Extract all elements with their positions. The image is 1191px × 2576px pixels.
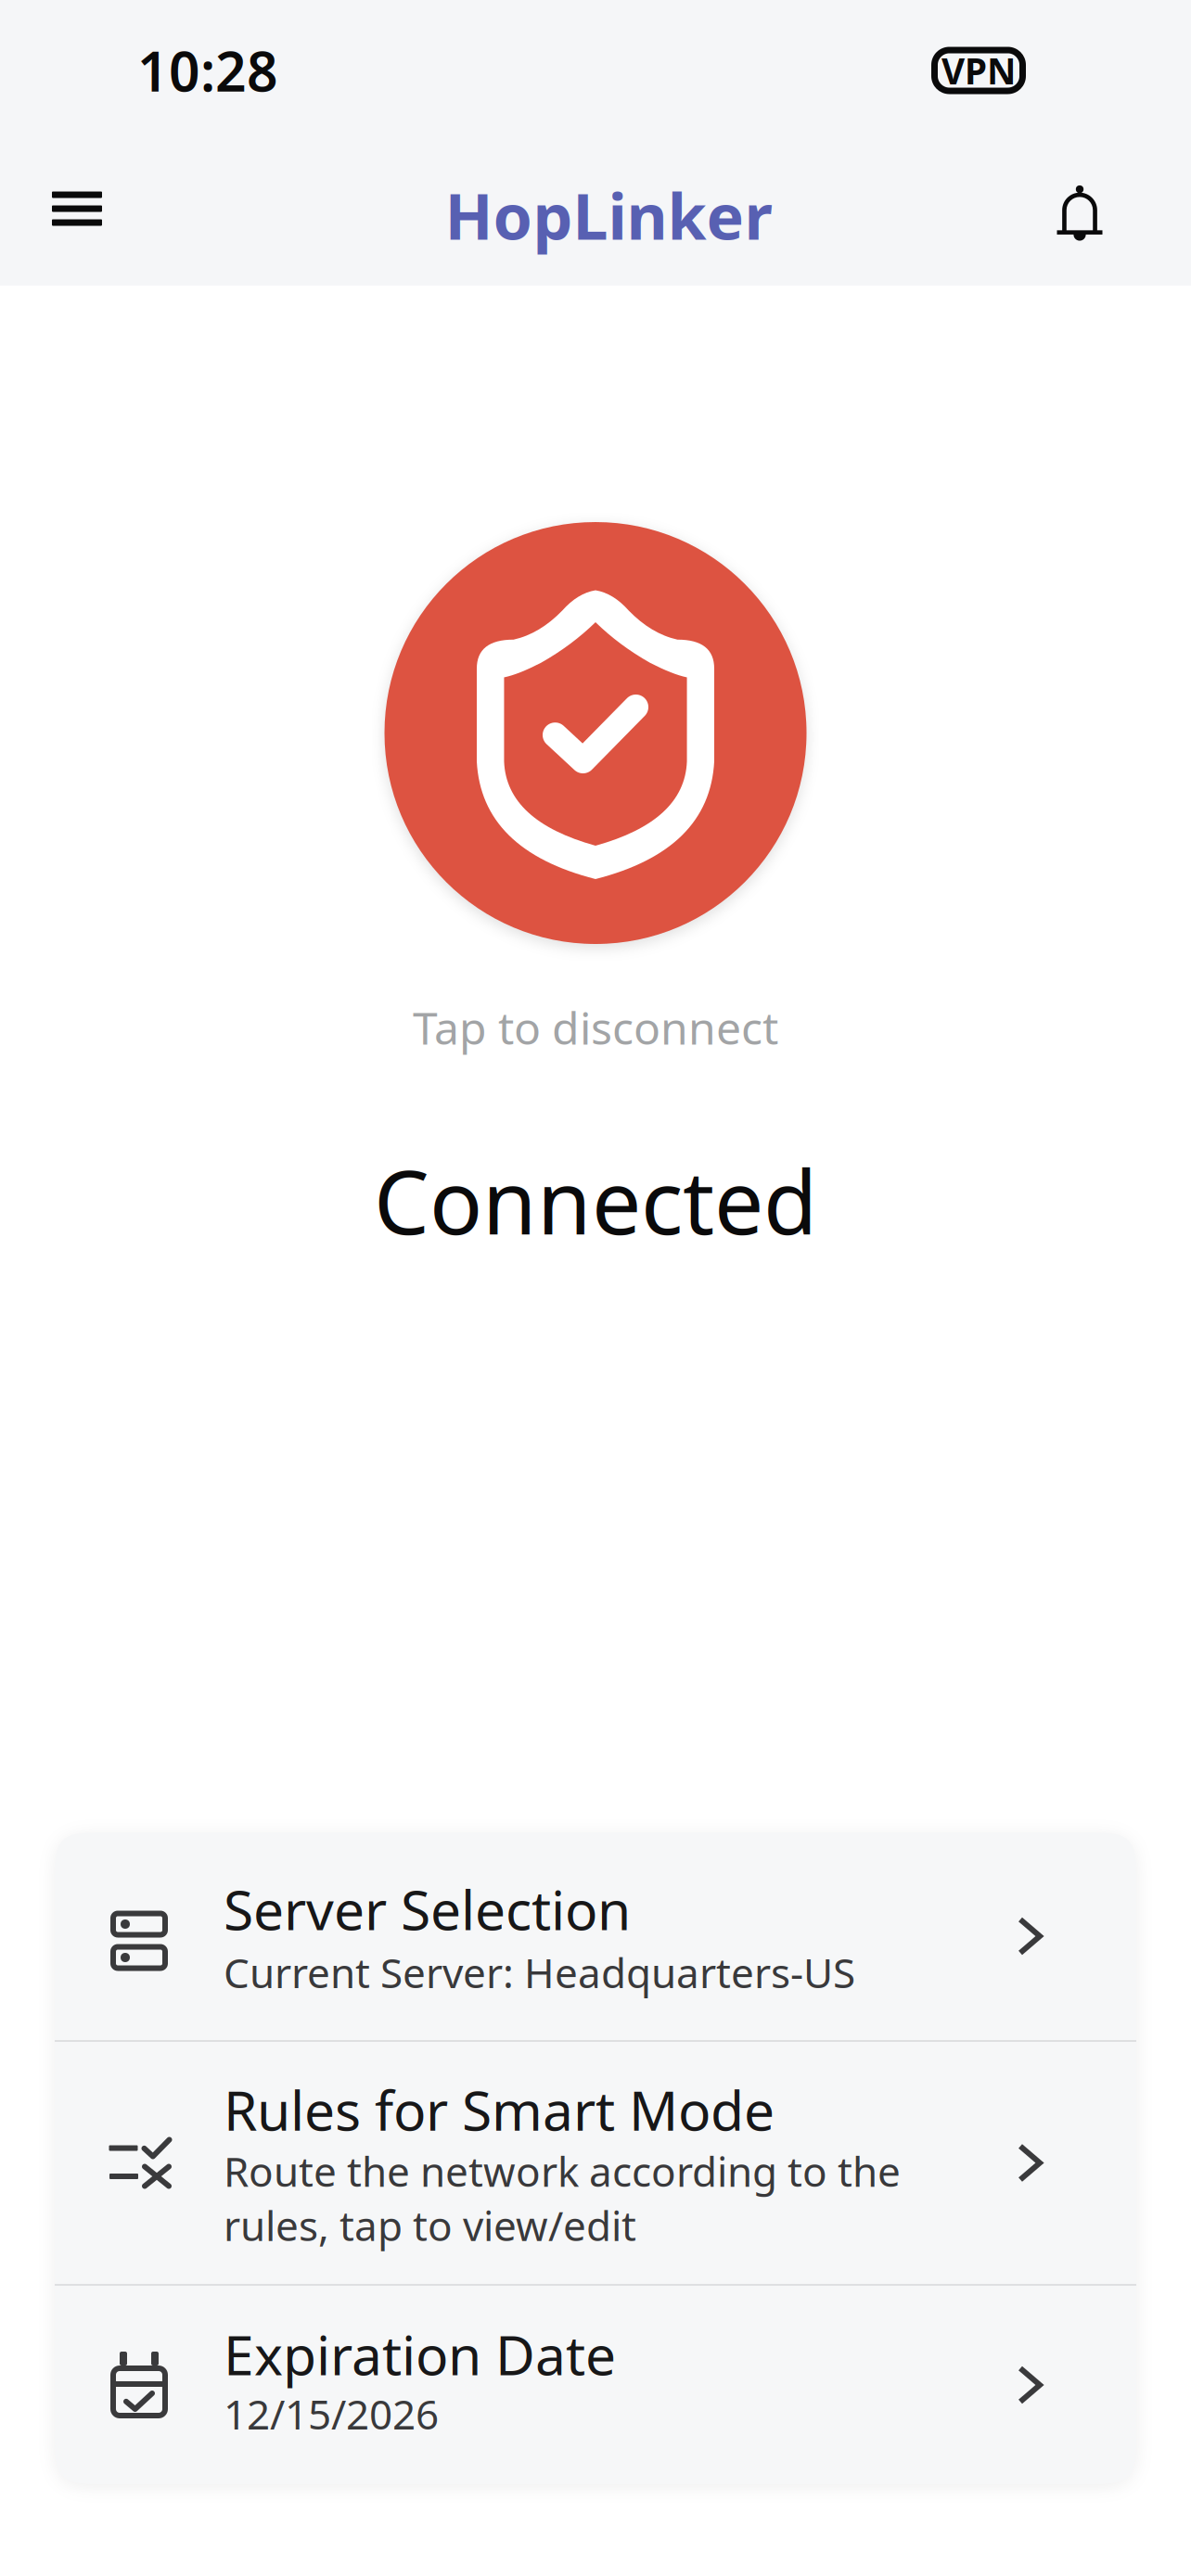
staticText: Rules for Smart Mode: [224, 2074, 775, 2146]
staticText: Expiration Date: [224, 2318, 616, 2390]
staticText: HopLinker: [445, 173, 772, 257]
staticText: VPN: [941, 47, 1016, 94]
staticText: Server Selection: [224, 1873, 631, 1945]
staticText: Tap to disconnect: [413, 998, 778, 1057]
staticText: Connected: [374, 1142, 817, 1259]
staticText: 12/15/2026: [224, 2387, 439, 2441]
staticText: Current Server: Headquarters-US: [224, 1945, 855, 1999]
button[interactable]: Expiration Date: [55, 2286, 1136, 2484]
staticText: 10:28: [137, 34, 278, 107]
button[interactable]: Disconnect: [384, 522, 807, 944]
button[interactable]: Notifications: [1015, 141, 1191, 286]
staticText: Route the network according to the rules…: [224, 2144, 901, 2252]
button[interactable]: Rules for Smart Mode: [55, 2042, 1136, 2284]
button[interactable]: Menu: [0, 141, 154, 286]
button[interactable]: Server Selection: [55, 1832, 1136, 2040]
